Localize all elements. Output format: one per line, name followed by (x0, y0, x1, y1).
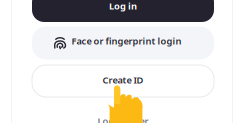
button[interactable]: Log in (32, 0, 214, 22)
button[interactable]: Create ID (32, 65, 214, 97)
button[interactable]: Log in later (32, 114, 214, 123)
staticText: Face or fingerprint login (71, 35, 181, 47)
button[interactable]: Face or fingerprint login (32, 26, 214, 59)
staticText: Create ID (102, 74, 143, 86)
staticText: Log in (109, 0, 137, 12)
staticText: Log in later (97, 115, 148, 123)
